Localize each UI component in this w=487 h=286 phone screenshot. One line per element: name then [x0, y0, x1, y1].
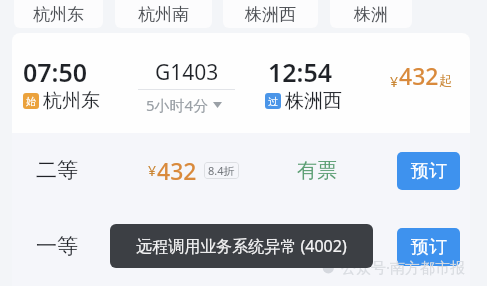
staticText: 二等: [36, 157, 78, 183]
staticText: 远程调用业务系统异常 (4002): [136, 235, 347, 257]
button[interactable]: 杭州南: [115, 0, 212, 28]
button[interactable]: 一等: [12, 209, 470, 285]
staticText: 杭州东: [33, 4, 84, 25]
button[interactable]: 07:50: [12, 33, 470, 133]
staticText: 07:50: [23, 55, 88, 89]
staticText: 有票: [297, 158, 337, 183]
staticText: 杭州南: [138, 4, 189, 25]
staticText: ¥: [390, 72, 399, 91]
staticText: 一等: [36, 233, 78, 259]
staticText: G1403: [155, 58, 219, 87]
button[interactable]: 二等: [12, 133, 470, 209]
staticText: 过: [268, 95, 278, 108]
button[interactable]: 预订: [397, 228, 460, 266]
staticText: 预订: [411, 160, 447, 183]
staticText: 株洲: [354, 4, 388, 25]
staticText: 5小时4分: [146, 95, 209, 115]
staticText: 公众号·南方都市报: [341, 257, 466, 277]
button[interactable]: 株洲西: [223, 0, 318, 28]
button[interactable]: 预订: [397, 152, 460, 190]
staticText: 预订: [411, 236, 447, 259]
staticText: 始: [26, 95, 36, 108]
button[interactable]: 杭州东: [14, 0, 103, 28]
button[interactable]: 株洲: [330, 0, 412, 28]
staticText: 12:54: [268, 55, 333, 89]
staticText: 432: [399, 60, 439, 91]
staticText: 起: [439, 72, 452, 88]
staticText: 杭州东: [43, 89, 100, 113]
staticText: 432: [157, 155, 197, 186]
staticText: ¥: [148, 161, 157, 180]
staticText: 8.4折: [208, 163, 235, 178]
staticText: 株洲西: [285, 89, 342, 113]
staticText: 株洲西: [245, 4, 296, 25]
